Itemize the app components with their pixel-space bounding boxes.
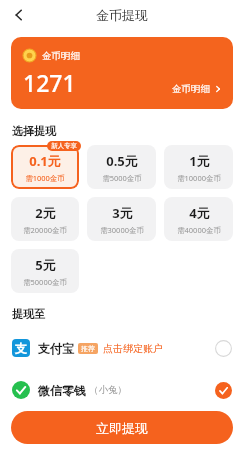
- staticText: 需40000金币: [177, 225, 221, 235]
- staticText: 需30000金币: [100, 225, 144, 235]
- staticText: 需50000金币: [23, 277, 67, 287]
- staticText: 支: [15, 341, 27, 356]
- button[interactable]: 立即提现: [11, 411, 233, 444]
- staticText: 2元: [35, 204, 56, 222]
- button[interactable]: 选择微信零钱: [215, 382, 232, 399]
- staticText: 0.5元: [106, 152, 138, 170]
- button[interactable]: 支: [0, 327, 244, 369]
- staticText: 提现至: [12, 307, 45, 321]
- button[interactable]: 1元: [164, 145, 233, 189]
- staticText: 金币提现: [96, 7, 148, 23]
- staticText: 微信零钱: [38, 383, 86, 398]
- button[interactable]: 2元: [11, 197, 79, 241]
- button[interactable]: 0.1元: [11, 145, 79, 189]
- button[interactable]: 3元: [87, 197, 156, 241]
- staticText: 金币明细: [172, 83, 210, 95]
- staticText: 需5000金币: [102, 173, 142, 183]
- staticText: 立即提现: [96, 420, 148, 436]
- button[interactable]: 0.5元: [87, 145, 156, 189]
- staticText: （小兔）: [89, 384, 127, 396]
- button[interactable]: 金币明细: [11, 37, 233, 109]
- staticText: 1271: [23, 67, 76, 98]
- staticText: 5元: [35, 256, 56, 274]
- staticText: 需10000金币: [177, 173, 221, 183]
- button[interactable]: 5元: [11, 249, 79, 293]
- staticText: 需1000金币: [25, 173, 65, 183]
- staticText: 支付宝: [38, 341, 74, 356]
- staticText: 新人专享: [51, 142, 77, 150]
- staticText: 4元: [189, 204, 210, 222]
- button[interactable]: 选择支付宝: [215, 340, 232, 357]
- staticText: 推荐: [81, 344, 95, 353]
- button[interactable]: 返回: [4, 0, 34, 30]
- staticText: 选择提现: [12, 124, 56, 138]
- staticText: 0.1元: [29, 152, 61, 170]
- staticText: 金币明细: [42, 50, 80, 62]
- staticText: 1元: [189, 152, 210, 170]
- staticText: 需20000金币: [23, 225, 67, 235]
- button[interactable]: 点击绑定账户: [103, 342, 163, 355]
- button[interactable]: 微信零钱: [0, 369, 244, 411]
- button[interactable]: 金币明细: [172, 83, 222, 95]
- button[interactable]: 4元: [164, 197, 233, 241]
- staticText: 3元: [112, 204, 133, 222]
